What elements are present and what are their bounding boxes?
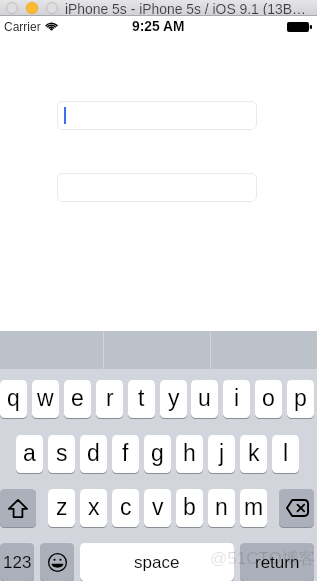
button[interactable]: i (223, 380, 250, 418)
staticText: 9:25 AM (132, 19, 185, 34)
button[interactable]: a (16, 435, 43, 473)
button[interactable]: Emoji keyboard (40, 543, 74, 581)
staticText: x (88, 494, 100, 520)
button[interactable]: h (176, 435, 203, 473)
button[interactable]: b (176, 489, 203, 527)
button[interactable] (57, 101, 257, 130)
button[interactable]: y (160, 380, 187, 418)
staticText: return (255, 553, 300, 572)
button[interactable]: Backspace (279, 489, 314, 527)
button[interactable]: s (48, 435, 75, 473)
button[interactable]: n (208, 489, 235, 527)
button[interactable]: o (255, 380, 282, 418)
button[interactable]: q (0, 380, 27, 418)
staticText: f (122, 440, 129, 466)
staticText: n (215, 494, 228, 520)
staticText: o (262, 385, 275, 411)
staticText: i (234, 385, 240, 411)
staticText: s (56, 440, 68, 466)
button[interactable]: t (128, 380, 155, 418)
button[interactable]: l (272, 435, 299, 473)
staticText: a (23, 440, 36, 466)
button[interactable]: Shift (0, 489, 36, 527)
button[interactable]: e (64, 380, 91, 418)
button[interactable]: 123 (0, 543, 34, 581)
staticText: r (106, 385, 114, 411)
staticText: y (168, 385, 180, 411)
staticText: t (138, 385, 145, 411)
staticText: p (294, 385, 307, 411)
staticText: @51CTO博客 (210, 548, 316, 569)
button[interactable]: x (80, 489, 107, 527)
button[interactable]: space (80, 543, 234, 581)
button[interactable]: return (240, 543, 314, 581)
staticText: z (56, 494, 68, 520)
staticText: l (283, 440, 289, 466)
staticText: e (71, 385, 84, 411)
button[interactable]: v (144, 489, 171, 527)
staticText: h (183, 440, 196, 466)
staticText: b (183, 494, 196, 520)
staticText: c (120, 494, 132, 520)
button[interactable]: f (112, 435, 139, 473)
button[interactable]: r (96, 380, 123, 418)
button[interactable]: z (48, 489, 75, 527)
button[interactable]: c (112, 489, 139, 527)
button[interactable]: d (80, 435, 107, 473)
staticText: q (7, 385, 20, 411)
staticText: iPhone 5s - iPhone 5s / iOS 9.1 (13B… (65, 1, 306, 17)
button[interactable]: k (240, 435, 267, 473)
button[interactable] (57, 173, 257, 202)
button[interactable]: u (191, 380, 218, 418)
button[interactable]: w (32, 380, 59, 418)
button[interactable]: m (240, 489, 267, 527)
staticText: j (219, 440, 225, 466)
staticText: g (151, 440, 164, 466)
staticText: k (248, 440, 260, 466)
staticText: u (198, 385, 211, 411)
staticText: 123 (3, 553, 32, 572)
staticText: m (244, 494, 264, 520)
staticText: space (134, 553, 180, 572)
staticText: Carrier (4, 20, 41, 33)
staticText: v (152, 494, 164, 520)
staticText: d (87, 440, 100, 466)
button[interactable]: p (287, 380, 314, 418)
staticText: w (37, 385, 54, 411)
button[interactable]: j (208, 435, 235, 473)
button[interactable]: g (144, 435, 171, 473)
